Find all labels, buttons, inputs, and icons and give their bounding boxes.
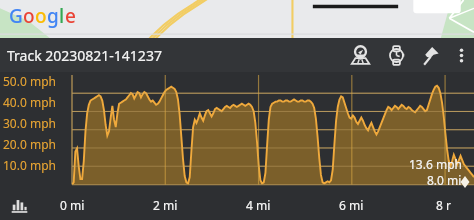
staticText: 6 mi: [339, 197, 364, 213]
staticText: 2 mi: [153, 197, 178, 213]
button[interactable]: Map preview: [0, 0, 474, 38]
staticText: G: [9, 3, 23, 29]
staticText: o: [23, 3, 35, 29]
staticText: 4 mi: [246, 197, 271, 213]
staticText: 8 r: [436, 197, 451, 213]
button[interactable]: More options: [448, 38, 474, 72]
staticText: l: [59, 3, 65, 29]
staticText: 13.6 mph: [409, 156, 462, 172]
staticText: g: [47, 3, 59, 29]
button[interactable]: Pin: [414, 38, 448, 72]
staticText: 20.0 mph: [3, 136, 56, 152]
button[interactable]: Watch: [378, 38, 414, 72]
staticText: e: [65, 3, 76, 29]
button[interactable]: Statistics: [7, 193, 31, 217]
button[interactable]: Show on map: [342, 38, 378, 72]
staticText: 50.0 mph: [3, 73, 56, 89]
staticText: 10.0 mph: [3, 157, 56, 173]
staticText: 8.0 mi: [427, 172, 462, 188]
staticText: 0 mi: [60, 197, 85, 213]
staticText: 30.0 mph: [3, 115, 56, 131]
staticText: o: [35, 3, 47, 29]
staticText: Track 20230821-141237: [7, 46, 162, 65]
staticText: 40.0 mph: [3, 94, 56, 110]
